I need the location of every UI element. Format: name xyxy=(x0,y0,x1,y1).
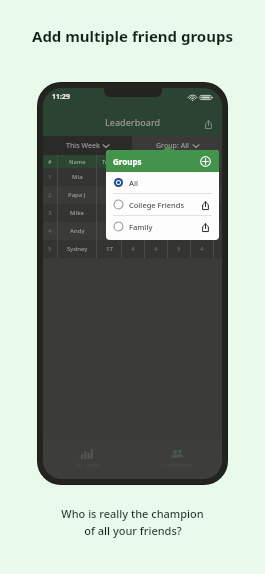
button[interactable]: Share College Friends xyxy=(199,199,211,211)
button[interactable]: 3 xyxy=(43,204,222,222)
button[interactable]: 2 xyxy=(43,186,222,204)
staticText: 5 xyxy=(48,245,52,253)
staticText: 17 xyxy=(106,245,113,253)
button[interactable]: All xyxy=(106,172,219,193)
staticText: # xyxy=(48,158,52,165)
staticText: 2 xyxy=(48,191,52,199)
button[interactable]: Leaderboard xyxy=(132,439,222,479)
staticText: College Friends xyxy=(129,200,185,210)
staticText: 5 xyxy=(177,245,181,253)
button[interactable]: 5 xyxy=(43,240,222,258)
button[interactable]: 4 xyxy=(43,222,222,240)
staticText: 11:29 xyxy=(52,92,70,102)
staticText: All xyxy=(129,178,138,188)
staticText: 3 xyxy=(48,209,52,217)
staticText: This Week xyxy=(66,141,100,151)
staticText: Leaderboard xyxy=(105,116,161,128)
button[interactable]: College Friends xyxy=(106,194,219,215)
staticText: Family xyxy=(129,222,153,232)
button[interactable]: This Week xyxy=(43,136,132,155)
staticText: 4 xyxy=(48,227,52,235)
button[interactable]: Group: All xyxy=(132,136,222,155)
staticText: Mia xyxy=(72,173,83,181)
staticText: Leaderboard xyxy=(162,462,193,469)
staticText: 4 xyxy=(131,245,135,253)
staticText: of all your friends? xyxy=(84,523,182,538)
staticText: Add multiple friend groups xyxy=(0,26,265,46)
staticText: Sydney xyxy=(67,245,88,253)
staticText: 4 xyxy=(154,245,158,253)
staticText: Groups xyxy=(113,156,142,167)
staticText: Group: All xyxy=(156,141,190,151)
staticText: Who is really the champion xyxy=(61,506,204,521)
staticText: Andy xyxy=(70,227,85,235)
staticText: Total xyxy=(102,158,116,165)
staticText: Mike xyxy=(70,209,84,217)
button[interactable]: Family xyxy=(106,216,219,237)
button[interactable]: Share leaderboard xyxy=(200,116,216,132)
staticText: 4 xyxy=(200,245,204,253)
staticText: 1 xyxy=(48,173,52,181)
button[interactable]: My Scores xyxy=(43,439,132,479)
button[interactable]: Add group xyxy=(198,154,212,168)
staticText: Name xyxy=(69,158,86,165)
staticText: Papa J xyxy=(68,191,86,199)
staticText: My Scores xyxy=(75,462,100,469)
button[interactable]: 1 xyxy=(43,168,222,186)
button[interactable]: Share Family xyxy=(199,221,211,233)
